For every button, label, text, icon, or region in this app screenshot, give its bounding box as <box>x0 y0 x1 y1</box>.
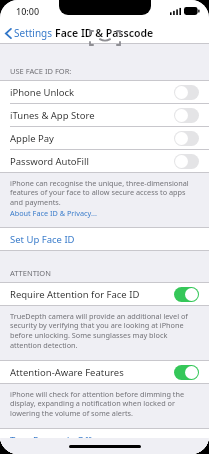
other: Disabled <box>174 131 199 146</box>
staticText: Password AutoFill <box>10 155 174 168</box>
staticText: USE FACE ID FOR: <box>10 66 72 76</box>
other: Disabled <box>174 85 199 100</box>
staticText: Settings <box>14 26 53 40</box>
staticText: 10:00 <box>16 5 40 17</box>
button[interactable]: Turn Passcode Off <box>0 429 209 451</box>
staticText: Change Passcode <box>10 452 89 454</box>
button[interactable]: Password AutoFill <box>0 150 209 172</box>
button[interactable]: Apple Pay <box>0 127 209 149</box>
staticText: Attention-Aware Features <box>10 366 174 379</box>
button[interactable]: iPhone Unlock <box>0 81 209 103</box>
staticText: About Face ID & Privacy... <box>10 208 97 218</box>
other: Disabled <box>174 108 199 123</box>
button[interactable]: Settings <box>0 23 59 43</box>
staticText: TrueDepth camera will provide an additio… <box>10 311 199 351</box>
button[interactable]: Set Up Face ID <box>0 228 209 250</box>
button[interactable]: Change Passcode <box>0 452 209 454</box>
staticText: Require Attention for Face ID <box>10 288 174 301</box>
staticText: Set Up Face ID <box>10 233 75 246</box>
staticText: Apple Pay <box>10 132 174 145</box>
staticText: iPhone will check for attention before d… <box>10 389 199 419</box>
staticText: iTunes & App Store <box>10 109 174 122</box>
other: Enabled <box>174 287 199 302</box>
button[interactable]: Attention-Aware Features <box>0 361 209 383</box>
button[interactable]: iTunes & App Store <box>0 104 209 126</box>
staticText: Turn Passcode Off <box>10 434 92 447</box>
staticText: ATTENTION <box>10 268 51 278</box>
button[interactable]: Require Attention for Face ID <box>0 283 209 305</box>
staticText: iPhone can recognise the unique, three-d… <box>10 178 199 208</box>
staticText: iPhone Unlock <box>10 86 174 99</box>
staticText: Face ID & Passcode <box>55 26 154 40</box>
button[interactable]: About Face ID & Privacy... <box>10 208 97 218</box>
other: Disabled <box>174 154 199 169</box>
other: Enabled <box>174 365 199 380</box>
